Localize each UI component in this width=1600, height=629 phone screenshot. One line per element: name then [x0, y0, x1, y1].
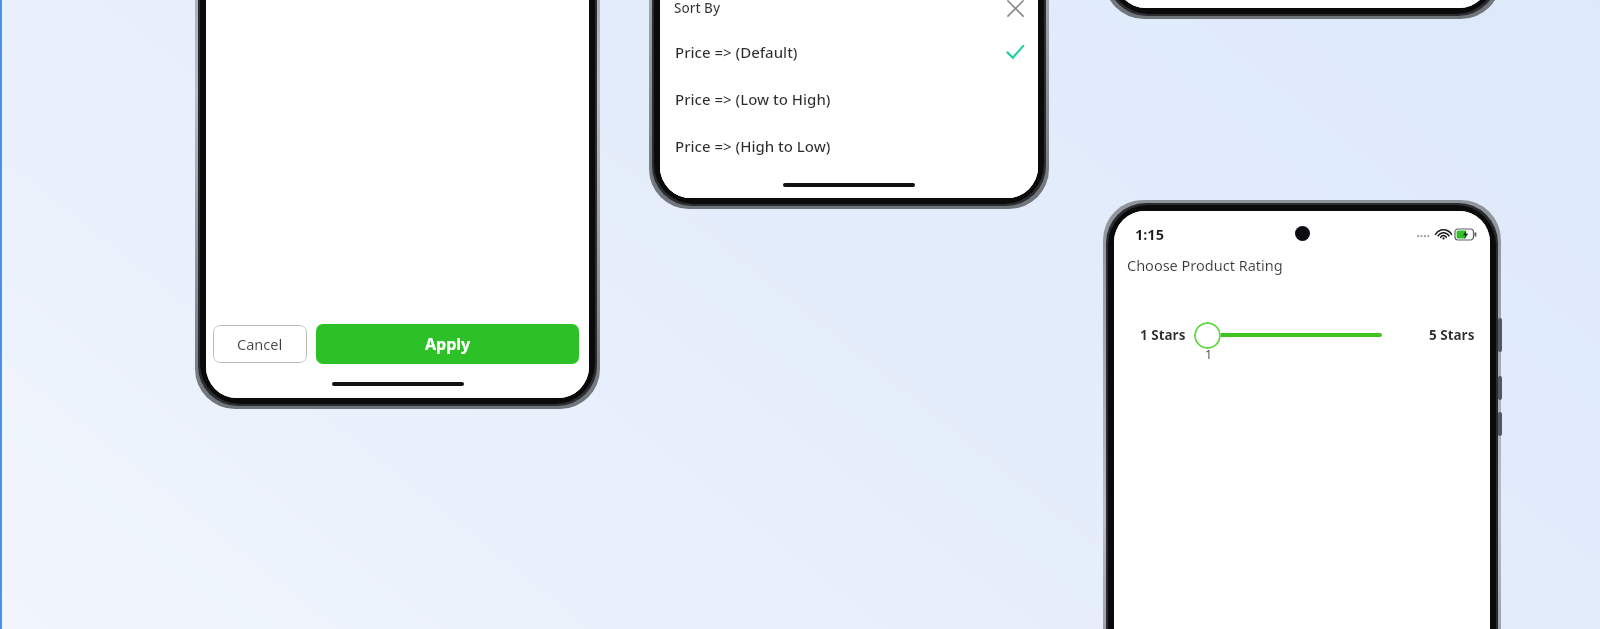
staticText: Price => (Default) — [675, 42, 798, 62]
button[interactable]: Apply — [316, 324, 579, 364]
staticText: Sort By — [674, 0, 721, 17]
button[interactable]: Price => (Low to High) — [660, 75, 1038, 122]
staticText: Price => (High to Low) — [675, 136, 831, 156]
staticText: 1 — [1205, 346, 1213, 363]
staticText: 1 Stars — [1140, 326, 1186, 344]
button[interactable]: Rating slider — [1194, 322, 1221, 349]
staticText: Choose Product Rating — [1127, 255, 1283, 275]
staticText: Apply — [425, 333, 471, 355]
staticText: 5 Stars — [1429, 326, 1475, 344]
staticText: Cancel — [237, 334, 283, 354]
staticText: Price => (Low to High) — [675, 89, 831, 109]
button[interactable]: Close — [1002, 0, 1028, 21]
button[interactable]: Price => (Default) — [660, 28, 1038, 75]
staticText: 1:15 — [1135, 224, 1164, 244]
button[interactable]: Cancel — [213, 325, 307, 363]
button[interactable]: Price => (High to Low) — [660, 122, 1038, 169]
